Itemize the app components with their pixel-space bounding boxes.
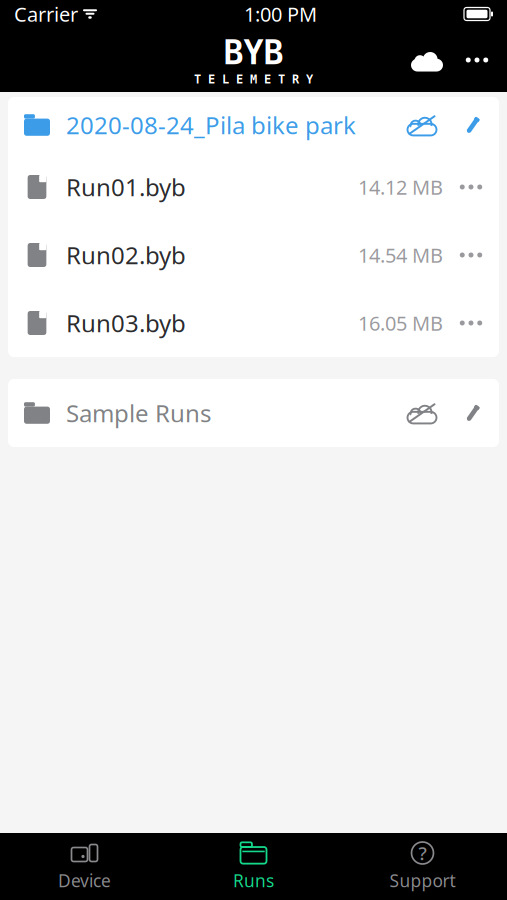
button[interactable]: Run02.byb [8,221,443,289]
staticText: Runs [233,869,274,892]
staticText: ? [418,841,426,865]
staticText: 2020-08-24_Pila bike park [66,109,356,141]
button[interactable]: Upload to cloud [397,385,447,441]
staticText: BYB [223,34,283,72]
button[interactable]: Device [0,833,169,900]
button[interactable]: Runs [169,833,338,900]
button[interactable]: ? [338,833,507,900]
button[interactable]: Rename [447,97,499,153]
staticText: Carrier [14,1,78,27]
button[interactable]: Upload to cloud [397,97,447,153]
button[interactable]: Sample Runs [8,385,397,441]
staticText: Device [58,869,111,892]
staticText: Run03.byb [66,307,186,339]
staticText: Support [389,869,455,892]
button[interactable]: 2020-08-24_Pila bike park [8,97,397,153]
staticText: Run01.byb [66,171,186,203]
button[interactable]: More options [453,34,501,86]
staticText: 1:00 PM [244,1,317,27]
staticText: Run02.byb [66,239,186,271]
button[interactable]: File options [443,221,499,289]
staticText: Sample Runs [66,397,211,429]
staticText: T E L E M E T R Y [194,73,313,86]
button[interactable]: File options [443,153,499,221]
staticText: 14.12 MB [358,174,443,200]
button[interactable]: Run01.byb [8,153,443,221]
button[interactable]: Rename [447,385,499,441]
button[interactable]: Cloud sync [401,34,453,86]
staticText: 14.54 MB [358,242,443,268]
button[interactable]: File options [443,289,499,357]
staticText: 16.05 MB [358,310,443,336]
button[interactable]: Run03.byb [8,289,443,357]
